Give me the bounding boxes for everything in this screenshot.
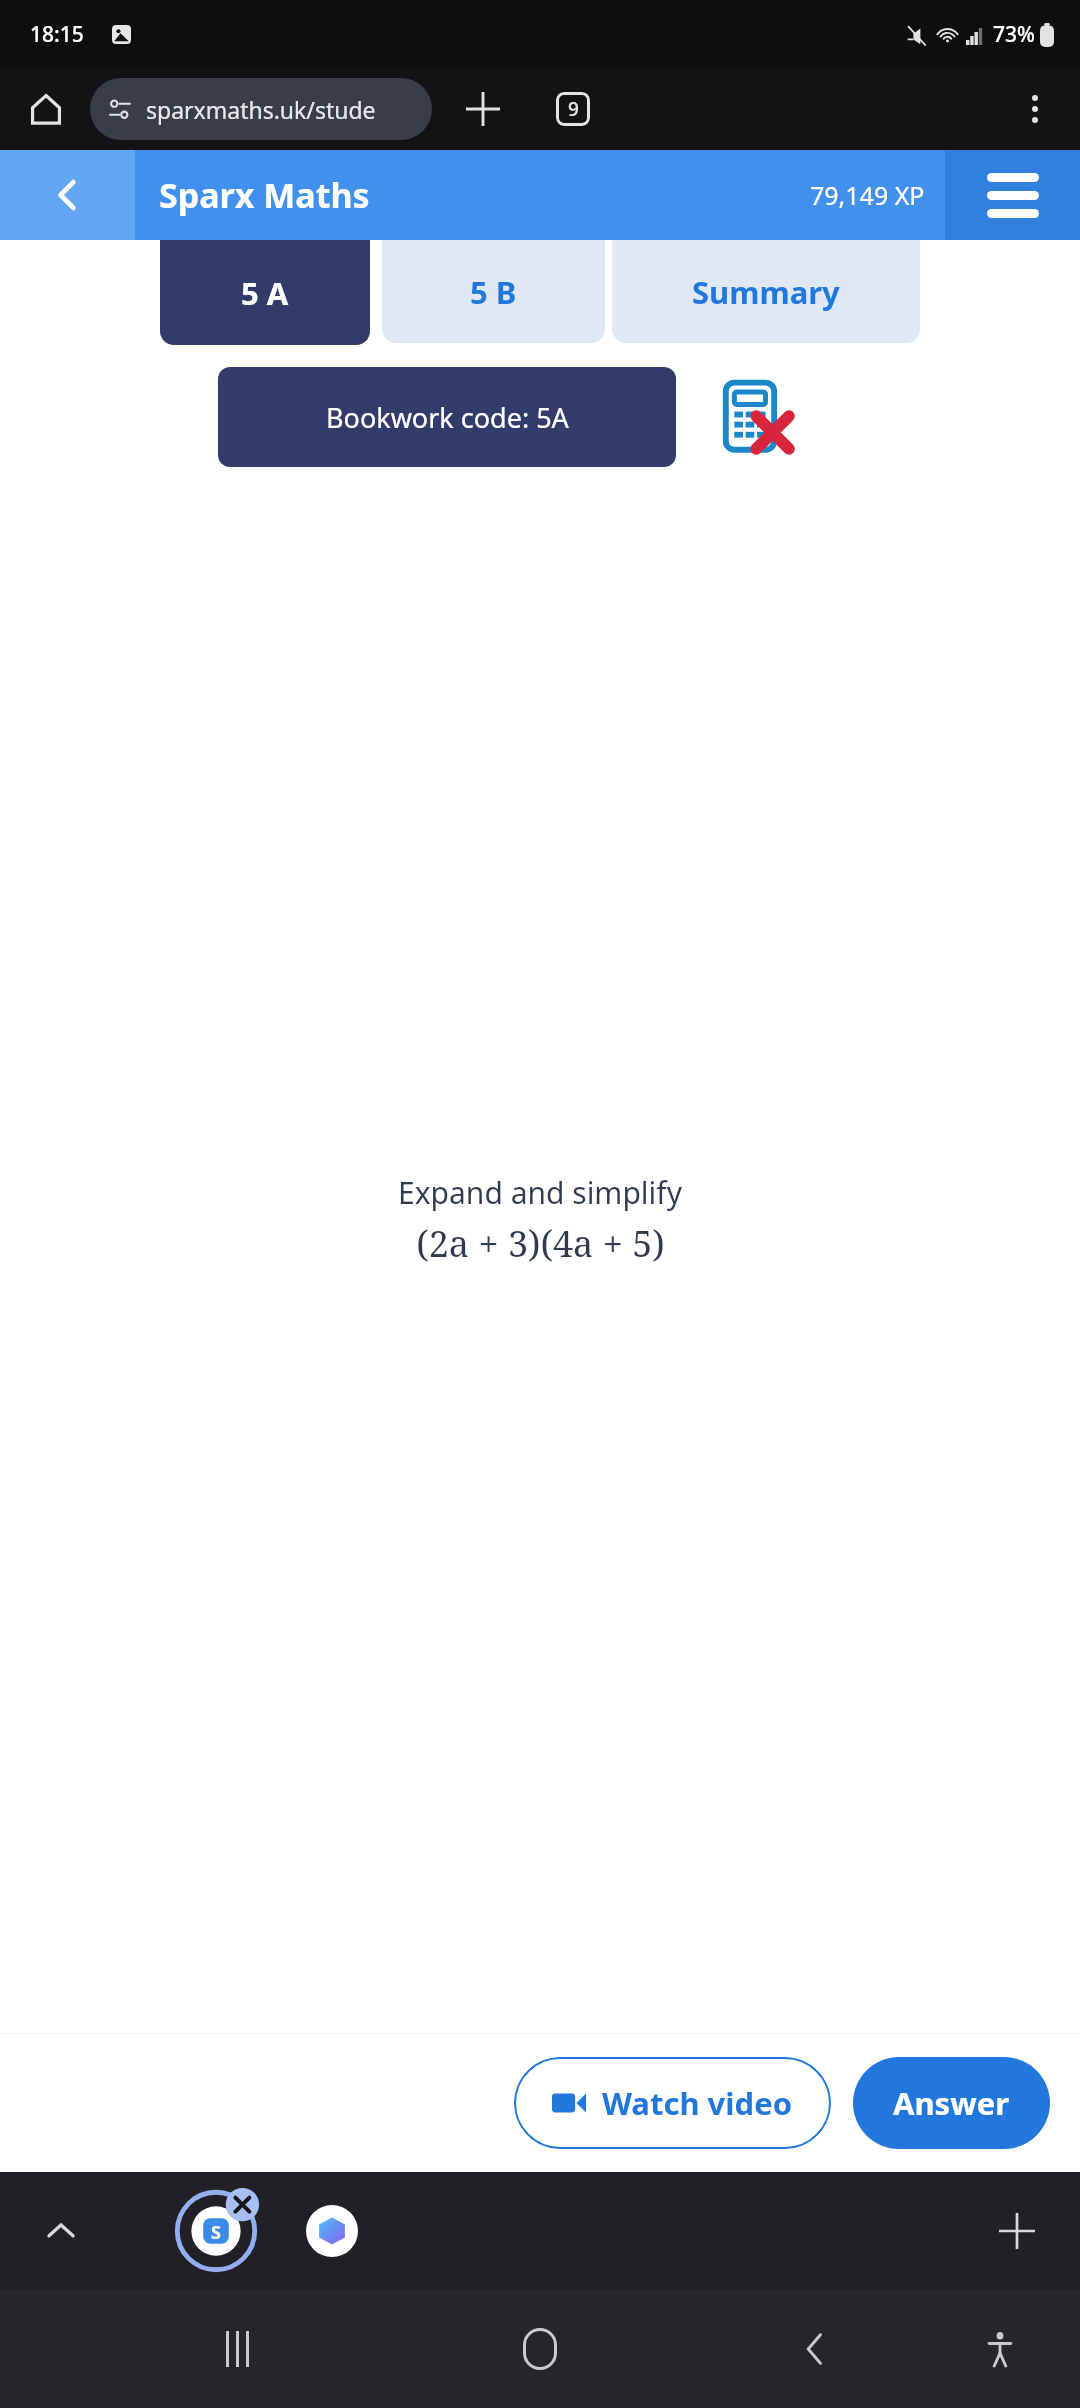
staticText: Sparx Maths [159, 172, 370, 218]
staticText: (2a + 3)(4a + 5) [416, 1219, 665, 1268]
staticText: Watch video [602, 2082, 793, 2124]
button[interactable]: New tab [452, 78, 514, 140]
button[interactable]: sparxmaths.uk/stude [90, 78, 432, 140]
button[interactable]: Bookwork code: 5A [218, 367, 676, 467]
staticText: 9 [568, 96, 579, 122]
button[interactable]: Home [18, 81, 74, 137]
button[interactable]: Expand [28, 2198, 94, 2264]
button[interactable]: Menu [945, 150, 1080, 240]
button[interactable]: 5 A [160, 240, 370, 345]
staticText: 18:15 [30, 20, 84, 49]
other: No calculator allowed [718, 378, 796, 456]
button[interactable]: Other tab [292, 2191, 372, 2271]
button[interactable]: Watch video [514, 2057, 831, 2149]
staticText: Bookwork code: 5A [326, 399, 569, 436]
button[interactable]: Accessibility [960, 2309, 1040, 2389]
staticText: S [211, 2220, 221, 2245]
button[interactable]: 5 B [382, 240, 605, 343]
button[interactable]: Sparx Maths tab [172, 2187, 260, 2275]
button[interactable]: Answer [853, 2057, 1050, 2149]
button[interactable]: Back [0, 150, 135, 240]
staticText: 5 B [470, 271, 517, 313]
button[interactable]: New tab [984, 2198, 1050, 2264]
staticText: Summary [692, 271, 840, 313]
button[interactable]: Summary [612, 240, 920, 343]
staticText: Expand and simplify [398, 1172, 682, 1213]
staticText: 73% [993, 20, 1035, 49]
button[interactable]: More options [1004, 78, 1066, 140]
staticText: 79,149 XP [810, 178, 925, 212]
staticText: Answer [893, 2082, 1010, 2124]
button[interactable]: Tabs [542, 78, 604, 140]
button[interactable]: Back [770, 2304, 860, 2394]
staticText: sparxmaths.uk/stude [146, 94, 376, 125]
staticText: 5 A [241, 272, 289, 314]
button[interactable]: Recent apps [192, 2304, 282, 2394]
button[interactable]: Home [495, 2304, 585, 2394]
